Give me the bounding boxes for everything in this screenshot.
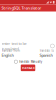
button[interactable]: TRANSLATE <box>21 65 35 71</box>
staticText: StringSQL Translator <box>2 5 42 11</box>
button[interactable]: Voice input <box>50 44 54 48</box>
staticText: enter text to be translated <box>2 41 27 51</box>
staticText: Translate Manually <box>19 60 42 63</box>
staticText: English <box>2 53 14 58</box>
button[interactable]: Translate from <box>2 49 20 58</box>
button[interactable]: Translate to <box>39 49 54 58</box>
staticText: Translate from <box>2 49 20 52</box>
staticText: Spanish <box>39 53 52 58</box>
staticText: TRANSLATE <box>21 66 34 70</box>
staticText: Translate to <box>39 49 54 52</box>
button[interactable]: Translate Manually <box>14 60 42 63</box>
